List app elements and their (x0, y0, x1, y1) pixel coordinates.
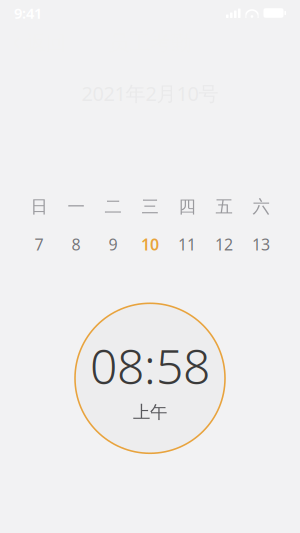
button[interactable]: 10 (131, 233, 168, 255)
button[interactable]: 7 (20, 233, 57, 255)
staticText: 二 (104, 196, 121, 217)
staticText: 一 (67, 196, 84, 217)
staticText: 10 (141, 234, 159, 255)
staticText: 9:41 (14, 3, 42, 23)
staticText: 08:58 (90, 334, 210, 397)
button[interactable]: 9 (94, 233, 131, 255)
staticText: 9 (108, 234, 117, 255)
staticText: 四 (178, 196, 195, 217)
staticText: 五 (215, 196, 232, 217)
staticText: 三 (141, 196, 158, 217)
staticText: 上午 (133, 401, 167, 423)
staticText: 11 (178, 234, 196, 255)
staticText: 日 (30, 196, 47, 217)
button[interactable]: 13 (242, 233, 279, 255)
staticText: 13 (252, 234, 270, 255)
staticText: 12 (215, 234, 233, 255)
button[interactable]: 11 (168, 233, 205, 255)
staticText: 8 (71, 234, 80, 255)
button[interactable]: 8 (57, 233, 94, 255)
button[interactable]: 12 (205, 233, 242, 255)
staticText: 7 (34, 234, 43, 255)
staticText: 六 (252, 196, 269, 217)
